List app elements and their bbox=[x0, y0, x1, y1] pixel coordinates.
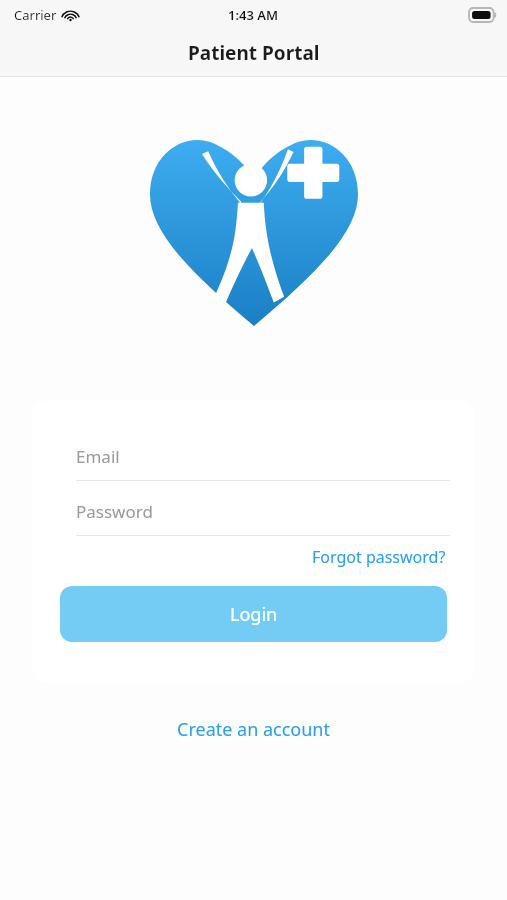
button[interactable]: Create an account bbox=[165, 711, 342, 748]
button[interactable]: Forgot password? bbox=[308, 542, 450, 572]
staticText: Create an account bbox=[177, 717, 330, 742]
staticText: Login bbox=[230, 602, 278, 627]
staticText: Password bbox=[76, 500, 153, 523]
staticText: Email bbox=[76, 445, 120, 468]
staticText: 1:43 AM bbox=[228, 6, 279, 24]
staticText: Forgot password? bbox=[312, 546, 446, 568]
button[interactable]: Password bbox=[76, 500, 450, 536]
staticText: Patient Portal bbox=[188, 40, 320, 66]
button[interactable]: Email bbox=[76, 445, 450, 481]
button[interactable]: Login bbox=[60, 586, 447, 642]
staticText: Carrier bbox=[14, 6, 57, 24]
